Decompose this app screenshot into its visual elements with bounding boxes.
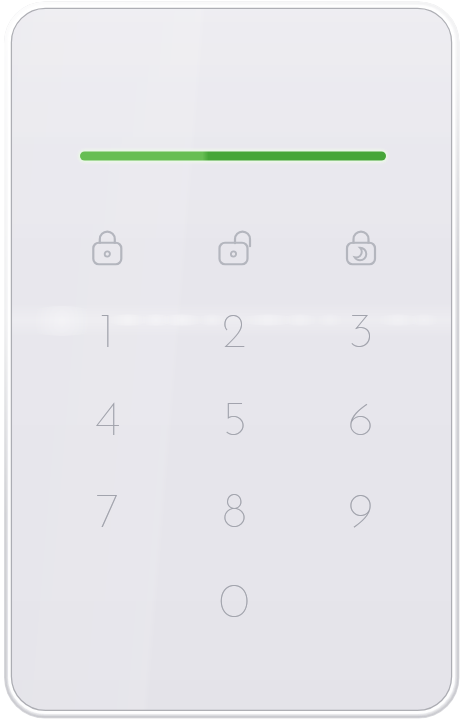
button[interactable]: 0 — [192, 562, 276, 646]
button[interactable]: 7 — [65, 472, 149, 556]
button[interactable]: Disarm — [207, 225, 261, 279]
button[interactable]: 8 — [192, 472, 276, 556]
staticText: 3 — [348, 310, 374, 359]
button[interactable]: 6 — [319, 380, 403, 464]
button[interactable]: 1 — [65, 292, 149, 376]
button[interactable]: 5 — [192, 380, 276, 464]
staticText: 4 — [95, 398, 120, 447]
staticText: 7 — [95, 490, 119, 539]
staticText: 9 — [348, 490, 374, 539]
staticText: 1 — [99, 310, 115, 359]
staticText: 0 — [219, 580, 250, 629]
button[interactable]: 9 — [319, 472, 403, 556]
button[interactable]: 2 — [192, 292, 276, 376]
button[interactable]: 3 — [319, 292, 403, 376]
button[interactable]: Arm away — [80, 225, 134, 279]
button[interactable]: Arm night — [334, 225, 388, 279]
staticText: 6 — [348, 398, 374, 447]
staticText: 8 — [222, 490, 247, 539]
staticText: 5 — [221, 398, 248, 447]
button[interactable]: 4 — [65, 380, 149, 464]
staticText: 2 — [222, 310, 247, 359]
